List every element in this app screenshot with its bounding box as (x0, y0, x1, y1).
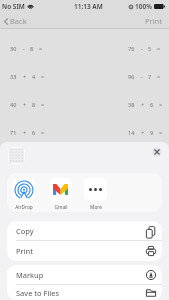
staticText: 38 (128, 101, 135, 108)
staticText: + (141, 129, 145, 136)
staticText: = (157, 73, 161, 80)
staticText: 40 (10, 101, 17, 108)
staticText: + (23, 101, 27, 108)
staticText: 30 (10, 45, 17, 52)
staticText: 100% (135, 2, 152, 11)
staticText: 7 (148, 73, 152, 80)
staticText: - (141, 73, 143, 80)
staticText: 6 (150, 101, 154, 108)
button[interactable]: Gmail (49, 178, 72, 211)
button[interactable]: AirDrop (12, 178, 35, 211)
staticText: More (90, 204, 102, 211)
button[interactable]: Print (7, 241, 162, 261)
staticText: + (141, 101, 145, 108)
button[interactable]: Copy (7, 221, 162, 241)
staticText: 96 (128, 73, 135, 80)
staticText: 5 (148, 45, 152, 52)
staticText: 14 (128, 129, 135, 136)
staticText: 33 (10, 73, 17, 80)
staticText: = (157, 45, 161, 52)
button[interactable]: Close (152, 147, 162, 157)
button[interactable]: More (84, 178, 107, 211)
staticText: Save to Files (16, 288, 60, 298)
button[interactable]: Back (0, 13, 31, 29)
staticText: 8 (30, 45, 34, 52)
staticText: 71 (10, 129, 17, 136)
staticText: 6 (32, 129, 36, 136)
staticText: = (41, 129, 45, 136)
staticText: + (23, 129, 27, 136)
staticText: Copy (16, 226, 34, 236)
staticText: Gmail (54, 204, 68, 211)
button[interactable]: Print (138, 13, 169, 29)
staticText: - (23, 45, 25, 52)
button[interactable]: Save to Files (7, 285, 162, 300)
staticText: 4 (32, 73, 36, 80)
staticText: = (39, 45, 43, 52)
staticText: Back (10, 16, 27, 26)
staticText: + (23, 73, 27, 80)
staticText: Print (145, 16, 162, 26)
staticText: 8 (32, 101, 36, 108)
staticText: = (41, 101, 45, 108)
staticText: AirDrop (15, 204, 33, 211)
staticText: Print (16, 246, 33, 256)
button[interactable]: Markup (7, 265, 162, 285)
staticText: = (41, 73, 45, 80)
staticText: = (159, 129, 163, 136)
staticText: 11:13 AM (74, 2, 103, 11)
staticText: = (159, 101, 163, 108)
staticText: - (141, 45, 143, 52)
staticText: Markup (16, 270, 44, 280)
staticText: No SIM (2, 2, 25, 11)
staticText: 76 (128, 45, 135, 52)
staticText: 9 (150, 129, 154, 136)
